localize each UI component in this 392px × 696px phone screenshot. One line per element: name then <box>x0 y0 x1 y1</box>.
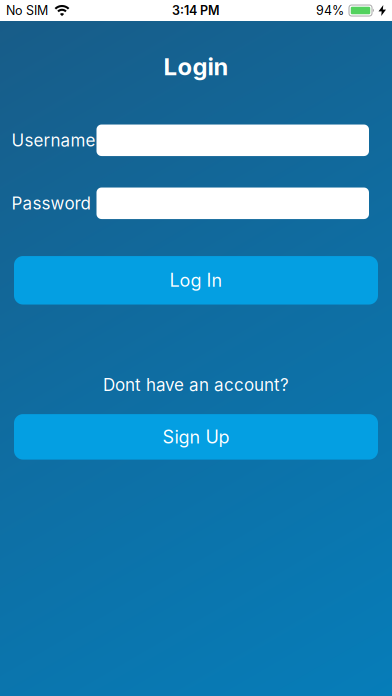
button[interactable] <box>96 187 369 219</box>
staticText: 94% <box>316 3 344 18</box>
button[interactable]: Sign Up <box>14 414 378 460</box>
staticText: Login <box>163 52 228 81</box>
button[interactable]: Log In <box>14 256 378 304</box>
staticText: Password <box>11 193 90 214</box>
button[interactable] <box>96 124 369 156</box>
staticText: Dont have an account? <box>103 374 289 395</box>
staticText: No SIM <box>6 3 48 18</box>
staticText: Sign Up <box>162 426 229 448</box>
staticText: Log In <box>169 269 222 291</box>
staticText: 3:14 PM <box>172 3 220 18</box>
staticText: Username <box>11 130 95 151</box>
